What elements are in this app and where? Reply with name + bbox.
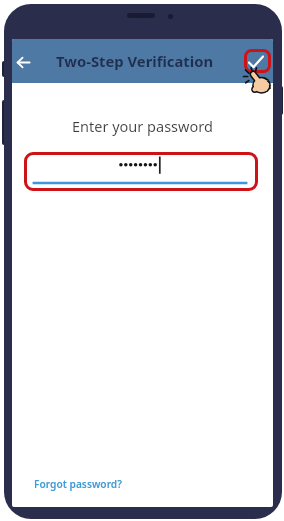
button[interactable] bbox=[21, 152, 264, 196]
staticText: Forgot password? bbox=[34, 477, 122, 491]
staticText: Enter your password bbox=[72, 116, 213, 136]
button[interactable] bbox=[244, 47, 272, 75]
button[interactable] bbox=[12, 43, 40, 79]
button[interactable]: Forgot password? bbox=[32, 475, 124, 493]
staticText: Two-Step Verification bbox=[56, 51, 214, 71]
